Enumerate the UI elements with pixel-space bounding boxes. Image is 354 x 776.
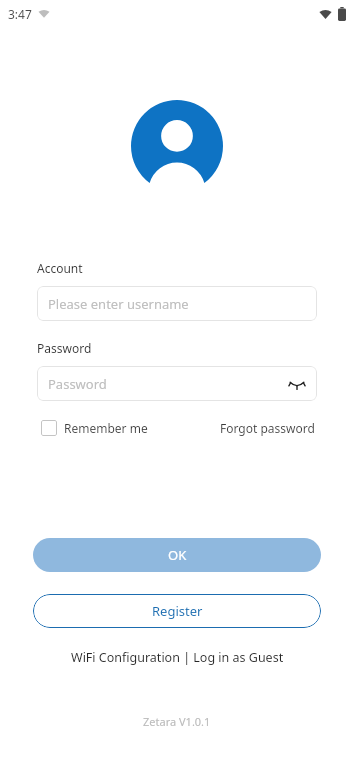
button[interactable]: Forgot password bbox=[218, 416, 317, 440]
staticText: WiFi Configuration | Log in as Guest bbox=[71, 649, 284, 666]
button[interactable]: WiFi Configuration | Log in as Guest bbox=[33, 645, 321, 670]
staticText: 3:47 bbox=[8, 6, 32, 22]
button[interactable]: OK bbox=[33, 538, 321, 572]
staticText: OK bbox=[168, 546, 187, 564]
staticText: Register bbox=[152, 602, 203, 620]
button[interactable]: Password bbox=[37, 366, 317, 401]
button[interactable]: Show password bbox=[288, 375, 306, 393]
staticText: Password bbox=[37, 340, 92, 356]
staticText: Password bbox=[48, 375, 107, 393]
staticText: Please enter username bbox=[48, 295, 189, 313]
staticText: Account bbox=[37, 260, 83, 276]
staticText: Forgot password bbox=[220, 420, 315, 436]
button[interactable]: Remember me bbox=[37, 416, 152, 440]
staticText: Zetara V1.0.1 bbox=[143, 714, 211, 729]
button[interactable]: Please enter username bbox=[37, 286, 317, 321]
button[interactable]: Register bbox=[33, 594, 321, 628]
staticText: Remember me bbox=[64, 420, 148, 436]
